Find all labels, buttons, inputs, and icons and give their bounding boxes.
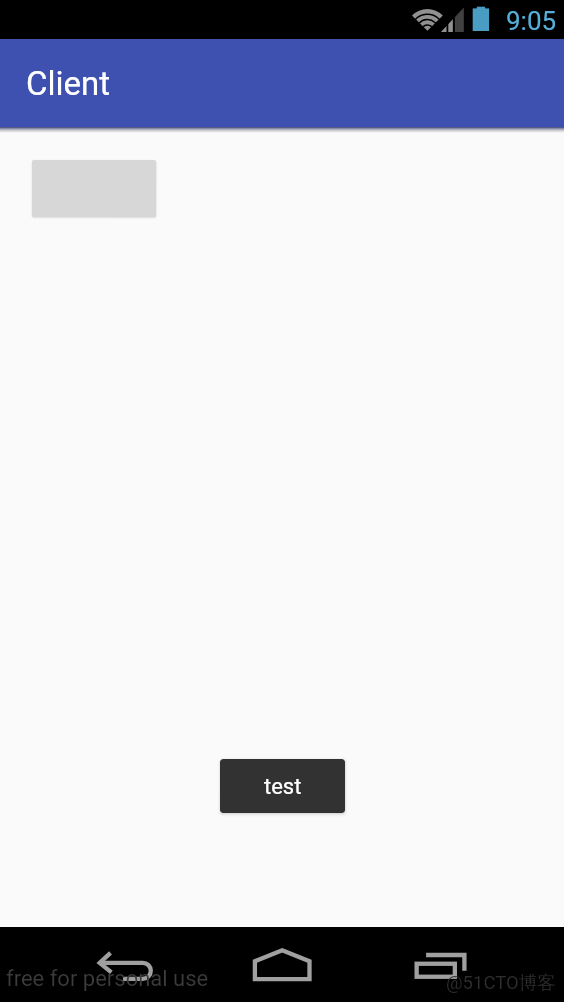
staticText: Client: [26, 64, 111, 103]
button[interactable]: test: [220, 759, 345, 813]
button[interactable]: Back: [78, 934, 172, 996]
staticText: test: [264, 774, 302, 800]
button[interactable]: Home: [235, 934, 329, 996]
staticText: @51CTO博客: [446, 971, 556, 994]
button[interactable]: Recent apps: [394, 934, 488, 996]
staticText: free for personal use: [6, 966, 209, 992]
staticText: 9:05: [506, 6, 557, 36]
